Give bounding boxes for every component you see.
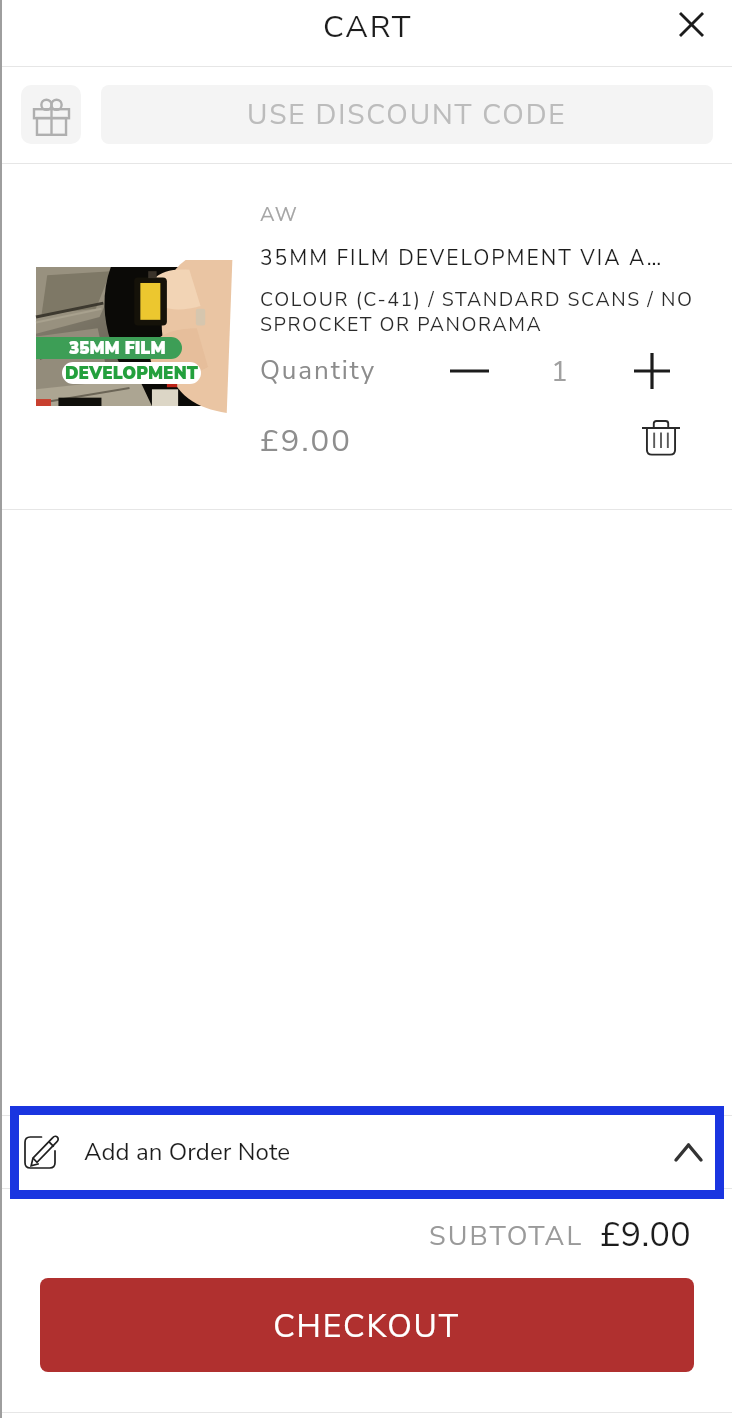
button[interactable]: Remove item <box>634 410 688 464</box>
staticText: USE DISCOUNT CODE <box>247 96 567 134</box>
staticText: £9.00 <box>600 1212 691 1258</box>
button[interactable]: Decrease quantity <box>442 345 496 397</box>
staticText: CART <box>323 6 413 48</box>
staticText: AW <box>260 201 298 228</box>
staticText: Add an Order Note <box>84 1136 291 1169</box>
staticText: DEVELOPMENT <box>65 362 198 384</box>
button[interactable]: Gift card <box>21 85 81 144</box>
button[interactable]: Close cart <box>669 2 714 47</box>
button[interactable]: Add an Order Note <box>10 1106 724 1199</box>
staticText: 35MM FILM DEVELOPMENT VIA A… <box>260 244 664 273</box>
staticText: SUBTOTAL <box>429 1218 584 1255</box>
staticText: COLOUR (C-41) / STANDARD SCANS / NO SPRO… <box>260 286 694 338</box>
staticText: 35MM FILM <box>69 337 166 359</box>
button[interactable]: Increase quantity <box>626 345 678 397</box>
staticText: Quantity <box>260 353 377 388</box>
staticText: CHECKOUT <box>273 1305 460 1349</box>
button[interactable]: CHECKOUT <box>40 1278 694 1372</box>
staticText: £9.00 <box>260 420 352 462</box>
button[interactable]: USE DISCOUNT CODE <box>101 85 713 144</box>
staticText: 1 <box>551 353 568 391</box>
